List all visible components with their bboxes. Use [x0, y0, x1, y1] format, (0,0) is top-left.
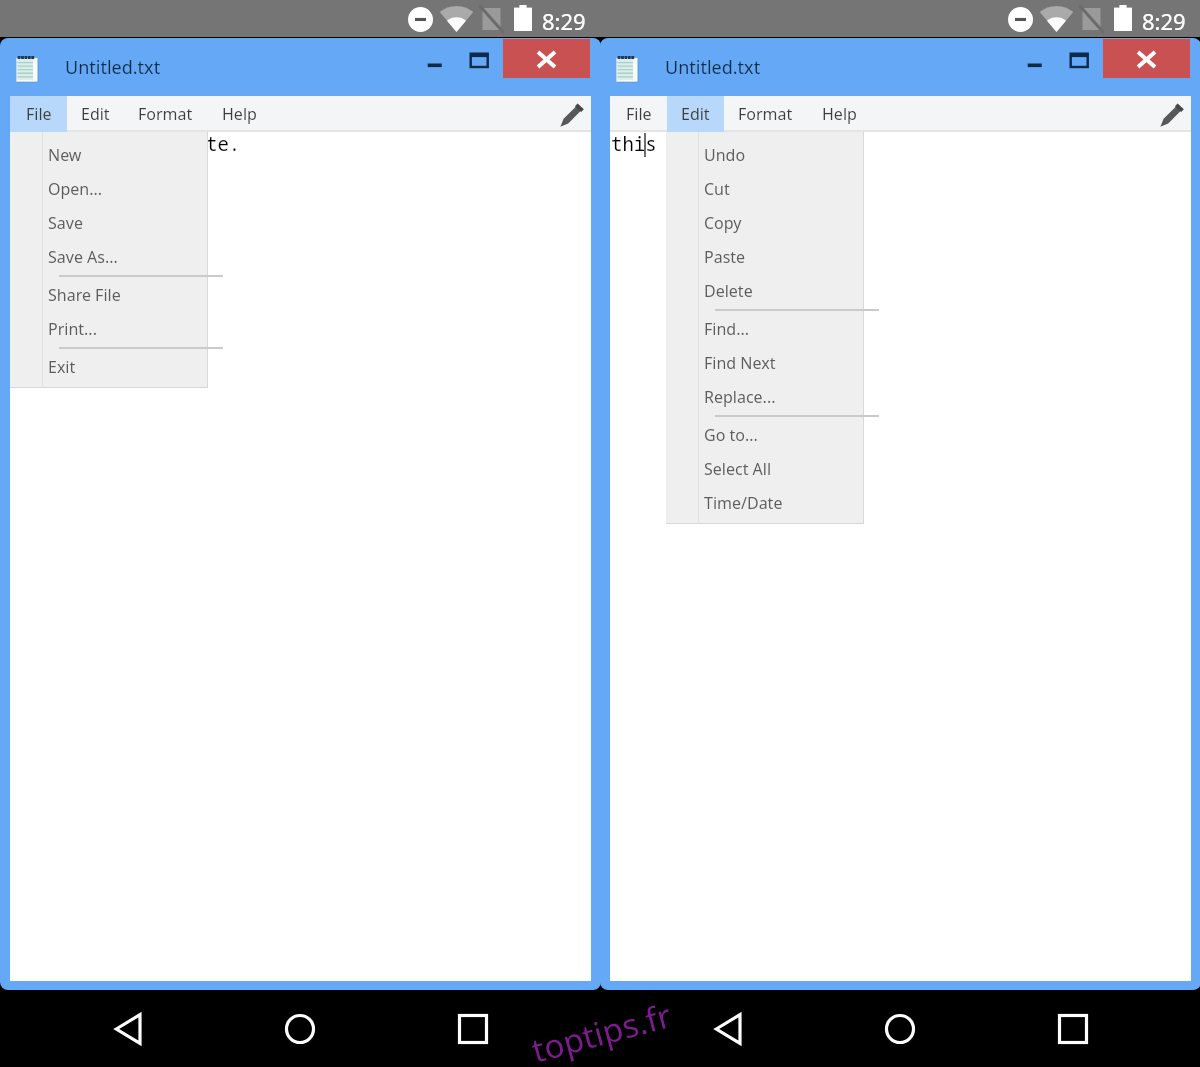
button[interactable]: Find...	[666, 312, 864, 346]
button[interactable]: Print...	[10, 312, 208, 346]
staticText: Find...	[704, 318, 750, 340]
button[interactable]: Back	[104, 1005, 152, 1053]
staticText: Share File	[48, 284, 121, 306]
button[interactable]: Help	[807, 96, 871, 132]
button[interactable]: Home	[876, 1005, 924, 1053]
button[interactable]: Back	[704, 1005, 752, 1053]
staticText: Untitled.txt	[65, 55, 161, 80]
staticText: Go to...	[704, 424, 758, 446]
staticText: Copy	[704, 212, 742, 234]
staticText: Paste	[704, 246, 746, 268]
staticText: File	[626, 103, 652, 125]
button[interactable]: Home	[276, 1005, 324, 1053]
button[interactable]: Save	[10, 206, 208, 240]
staticText: Edit	[81, 103, 110, 125]
button[interactable]: Close	[1103, 39, 1190, 78]
button[interactable]: Open...	[10, 172, 208, 206]
staticText: Cut	[704, 178, 730, 200]
button[interactable]: Edit	[667, 96, 724, 132]
button[interactable]: Minimize	[415, 46, 455, 86]
staticText: Find Next	[704, 352, 776, 374]
button[interactable]: Replace...	[666, 380, 864, 414]
staticText: Replace...	[704, 386, 776, 408]
button[interactable]: Copy	[666, 206, 864, 240]
button[interactable]: Maximize	[458, 46, 498, 86]
staticText: Format	[738, 103, 793, 125]
button[interactable]: Maximize	[1058, 46, 1098, 86]
staticText: Select All	[704, 458, 772, 480]
staticText: File	[26, 103, 52, 125]
staticText: Format	[138, 103, 193, 125]
button[interactable]: Edit	[67, 96, 124, 132]
staticText: Time/Date	[704, 492, 783, 514]
button[interactable]: File	[10, 96, 67, 132]
button[interactable]: Edit note	[553, 96, 591, 132]
button[interactable]: Exit	[10, 350, 208, 384]
button[interactable]: Help	[207, 96, 271, 132]
staticText: 8:29	[1142, 6, 1186, 36]
button[interactable]: File	[610, 96, 667, 132]
staticText: toptips.fr	[527, 992, 676, 1067]
button[interactable]: Format	[724, 96, 807, 132]
staticText: Help	[822, 103, 857, 125]
button[interactable]: Paste	[666, 240, 864, 274]
button[interactable]: Recents	[1049, 1005, 1097, 1053]
button[interactable]: New	[10, 138, 208, 172]
button[interactable]: Find Next	[666, 346, 864, 380]
button[interactable]: Save As...	[10, 240, 208, 274]
button[interactable]: Recents	[449, 1005, 497, 1053]
button[interactable]: Undo	[666, 138, 864, 172]
staticText: Delete	[704, 280, 753, 302]
staticText: Undo	[704, 144, 746, 166]
button[interactable]: Minimize	[1015, 46, 1055, 86]
staticText: Print...	[48, 318, 97, 340]
button[interactable]: Select All	[666, 452, 864, 486]
staticText: New	[48, 144, 82, 166]
button[interactable]: Go to...	[666, 418, 864, 452]
button[interactable]: Share File	[10, 278, 208, 312]
staticText: Untitled.txt	[665, 55, 761, 80]
button[interactable]: Cut	[666, 172, 864, 206]
staticText: Save	[48, 212, 83, 234]
staticText: te.	[206, 131, 241, 157]
button[interactable]: Edit note	[1153, 96, 1191, 132]
staticText: 8:29	[542, 6, 586, 36]
staticText: Exit	[48, 356, 76, 378]
staticText: this	[611, 131, 657, 157]
staticText: Edit	[681, 103, 710, 125]
button[interactable]: Close	[503, 39, 590, 78]
button[interactable]: Format	[124, 96, 207, 132]
staticText: Help	[222, 103, 257, 125]
staticText: Save As...	[48, 246, 118, 268]
staticText: Open...	[48, 178, 103, 200]
button[interactable]: Time/Date	[666, 486, 864, 520]
button[interactable]: Delete	[666, 274, 864, 308]
